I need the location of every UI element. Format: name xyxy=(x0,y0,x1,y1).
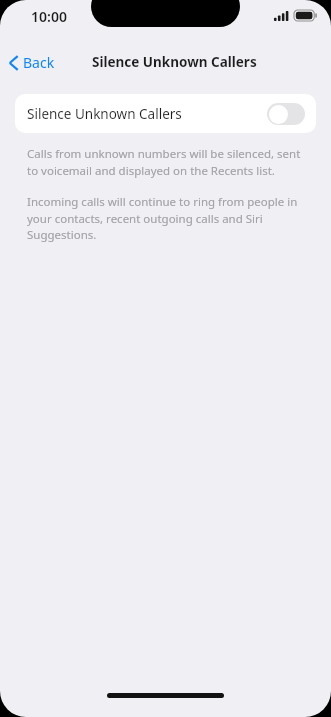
staticText: Silence Unknown Callers xyxy=(27,105,267,123)
staticText: Incoming calls will continue to ring fro… xyxy=(27,194,304,242)
staticText: Calls from unknown numbers will be silen… xyxy=(27,146,304,178)
button[interactable]: Back xyxy=(0,49,63,76)
button[interactable]: Silence Unknown Callers toggle, off xyxy=(267,103,305,125)
staticText: Back xyxy=(23,53,55,72)
staticText: 10:00 xyxy=(31,7,67,26)
staticText: Silence Unknown Callers xyxy=(92,53,257,71)
button[interactable]: Silence Unknown Callers xyxy=(15,94,316,133)
